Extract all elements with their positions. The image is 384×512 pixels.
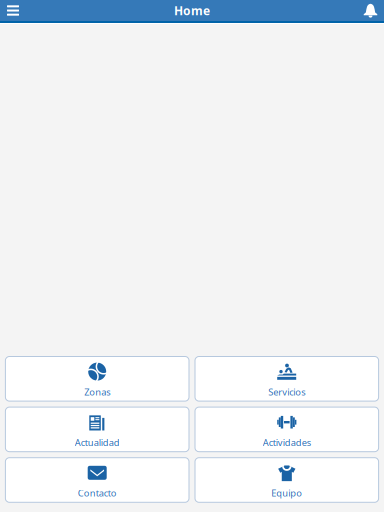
button[interactable]: Actualidad	[5, 407, 189, 452]
staticText: Actualidad	[75, 436, 120, 449]
staticText: Home	[174, 2, 210, 18]
button[interactable]: Notifications	[358, 0, 383, 21]
button[interactable]: Zonas	[5, 356, 189, 401]
button[interactable]: Actividades	[195, 407, 379, 452]
button[interactable]: Menu	[0, 0, 25, 21]
staticText: Equipo	[271, 487, 302, 499]
staticText: Contacto	[78, 487, 117, 499]
button[interactable]: Servicios	[195, 356, 379, 401]
button[interactable]: Equipo	[195, 458, 379, 502]
staticText: Servicios	[268, 386, 305, 398]
button[interactable]: Contacto	[5, 458, 189, 502]
staticText: Zonas	[84, 386, 110, 398]
staticText: Actividades	[263, 436, 311, 449]
